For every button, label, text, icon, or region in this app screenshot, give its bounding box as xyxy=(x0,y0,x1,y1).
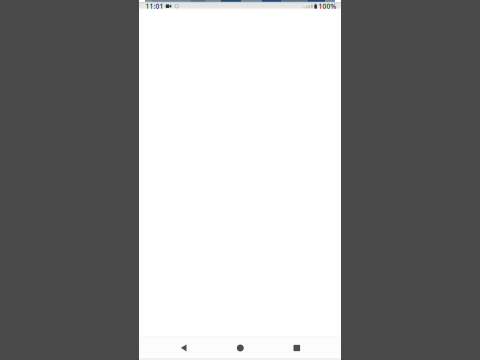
staticText: 100% xyxy=(318,2,336,11)
button[interactable]: Back xyxy=(167,341,201,355)
button[interactable]: Recent apps xyxy=(280,341,314,355)
button[interactable]: Home xyxy=(223,341,257,355)
staticText: 11:01 xyxy=(145,2,163,11)
